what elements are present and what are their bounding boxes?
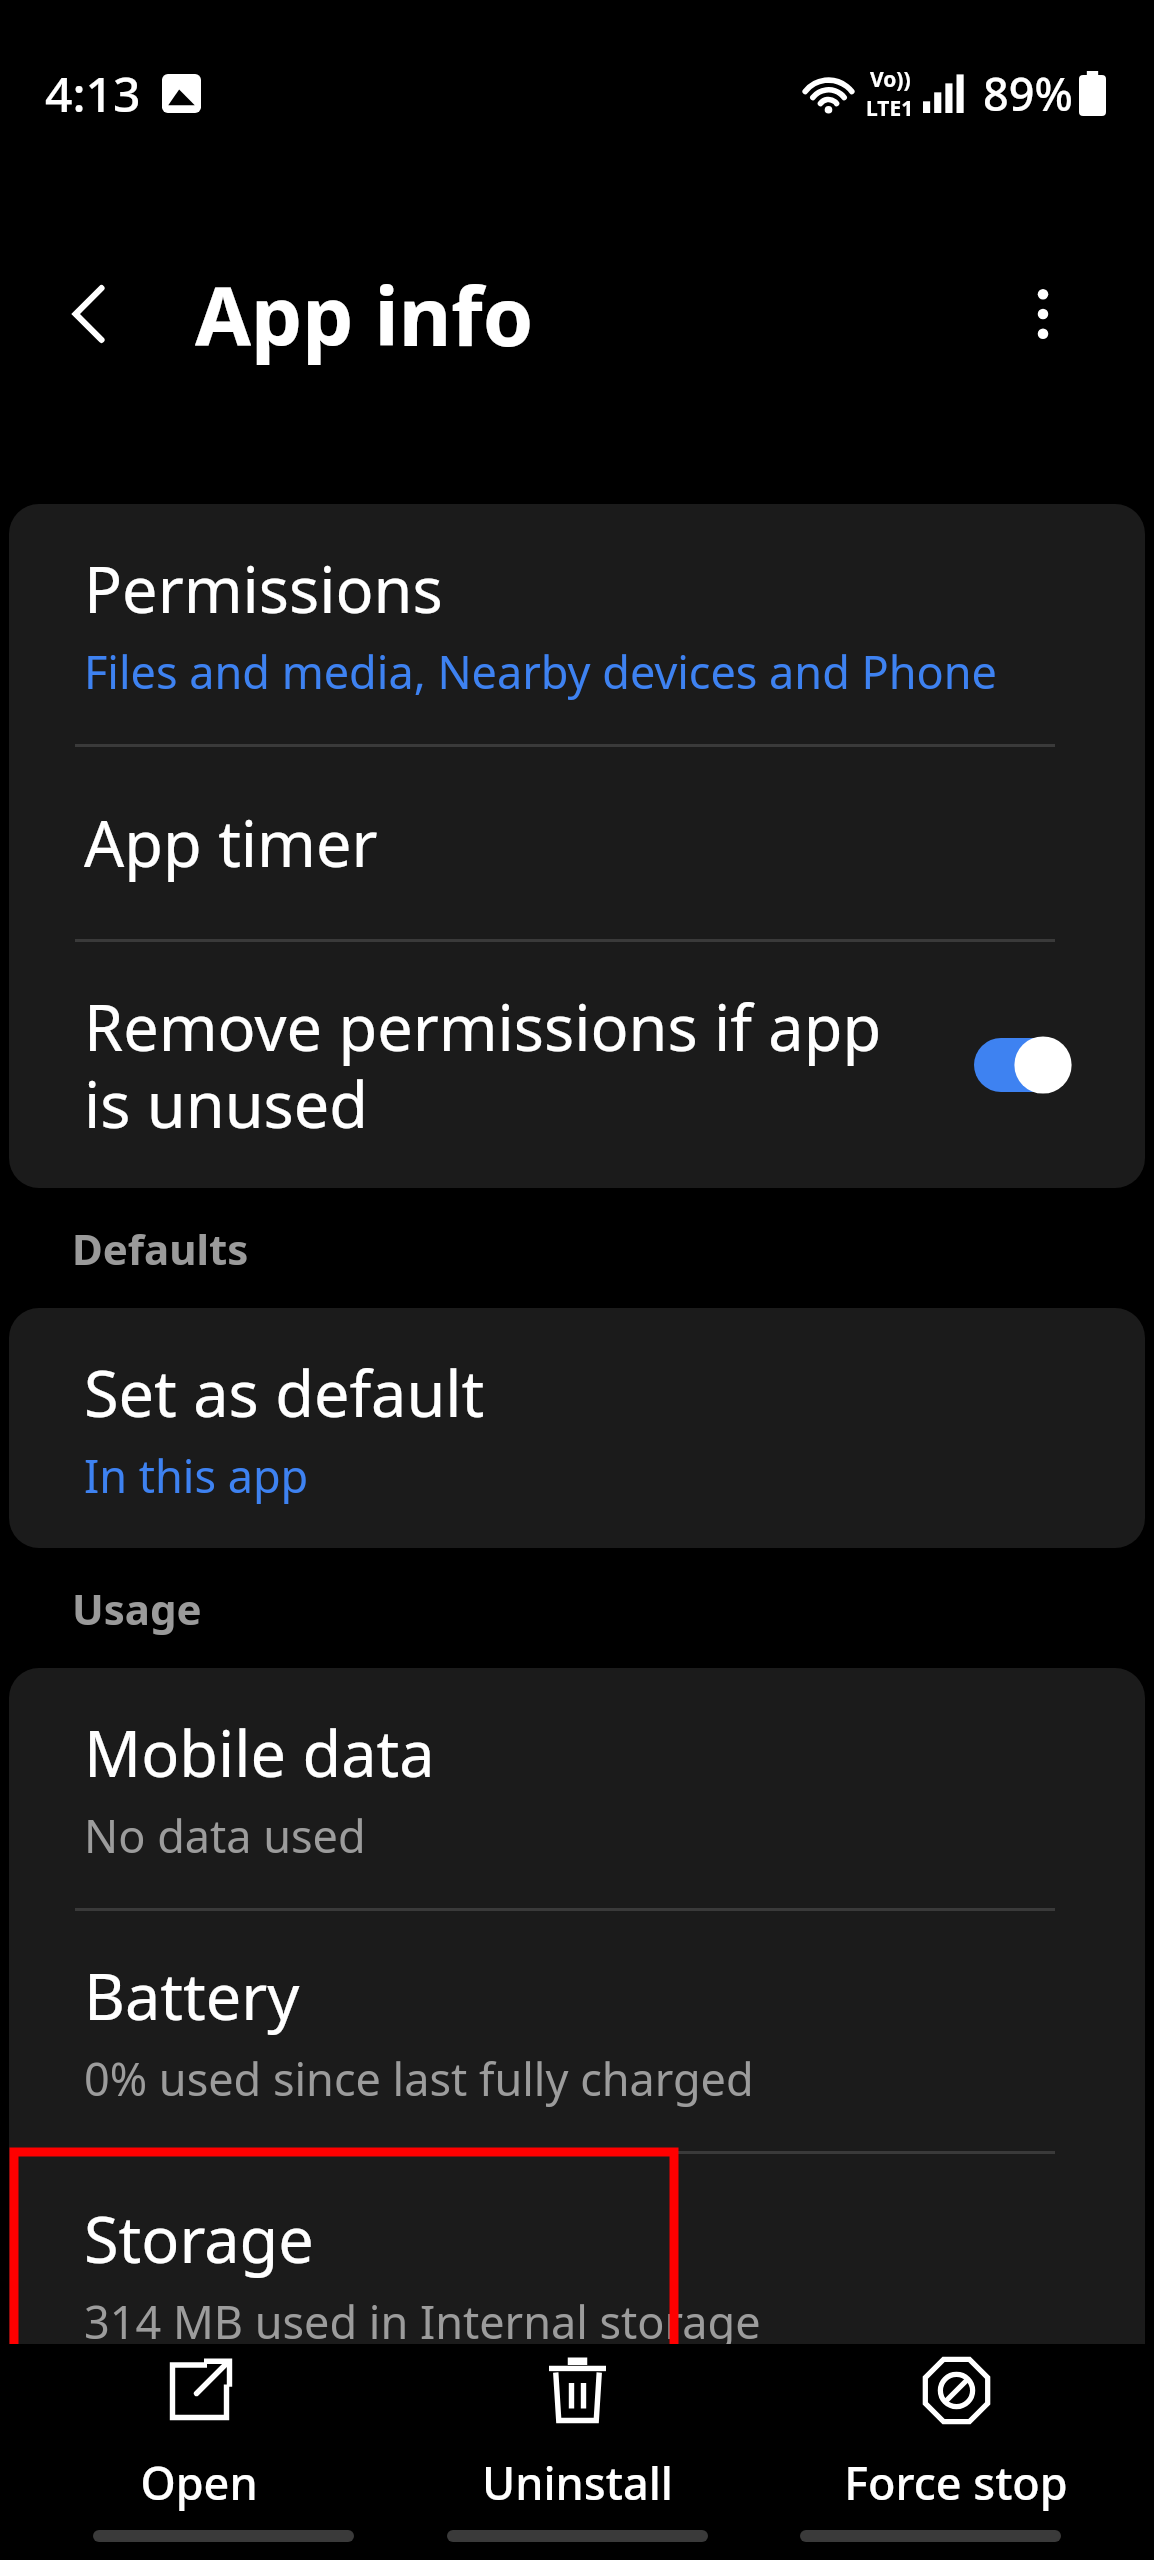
button[interactable]: Open xyxy=(19,2344,379,2513)
staticText: 0% used since last fully charged xyxy=(84,2048,754,2109)
staticText: Vo)) xyxy=(870,65,911,94)
button[interactable]: Battery xyxy=(42,1911,1112,2151)
button[interactable]: Back xyxy=(0,224,180,404)
staticText: Battery xyxy=(84,1953,300,2039)
button[interactable]: Storage xyxy=(42,2154,1112,2394)
staticText: LTE1 xyxy=(866,94,914,123)
button[interactable]: Permissions xyxy=(42,504,1112,744)
staticText: Force stop xyxy=(844,2452,1068,2513)
button[interactable]: More options xyxy=(959,230,1127,398)
button[interactable]: Uninstall xyxy=(397,2344,757,2513)
staticText: Files and media, Nearby devices and Phon… xyxy=(84,641,997,702)
staticText: Uninstall xyxy=(482,2452,673,2513)
staticText: Open xyxy=(140,2452,258,2513)
button[interactable]: App timer xyxy=(42,747,1112,939)
staticText: 89% xyxy=(983,63,1073,124)
staticText: 314 MB used in Internal storage xyxy=(84,2291,761,2352)
staticText: Mobile data xyxy=(84,1710,435,1796)
button[interactable]: Force stop xyxy=(776,2344,1136,2513)
staticText: 6.1 MB used on average in last 3 hours xyxy=(84,2496,901,2557)
button[interactable]: Set as default xyxy=(42,1308,1112,1548)
staticText: Storage xyxy=(84,2196,314,2282)
staticText: App timer xyxy=(84,800,378,886)
staticText: Memory xyxy=(84,2401,332,2487)
staticText: No data used xyxy=(84,1805,366,1866)
staticText: Usage xyxy=(72,1580,202,1637)
staticText: Defaults xyxy=(72,1220,249,1277)
button[interactable]: Memory xyxy=(42,2397,1112,2560)
staticText: 4:13 xyxy=(45,61,141,126)
staticText: Permissions xyxy=(84,546,443,632)
staticText: Remove permissions if app is unused xyxy=(84,984,890,1147)
staticText: App info xyxy=(195,259,534,369)
button[interactable]: Remove permissions if app is unused xyxy=(42,942,1112,1188)
button[interactable]: Mobile data xyxy=(42,1668,1112,1908)
staticText: In this app xyxy=(84,1445,309,1506)
staticText: Set as default xyxy=(84,1350,485,1436)
